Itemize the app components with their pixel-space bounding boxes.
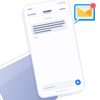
button[interactable]: Messaging illustration [0,0,100,100]
